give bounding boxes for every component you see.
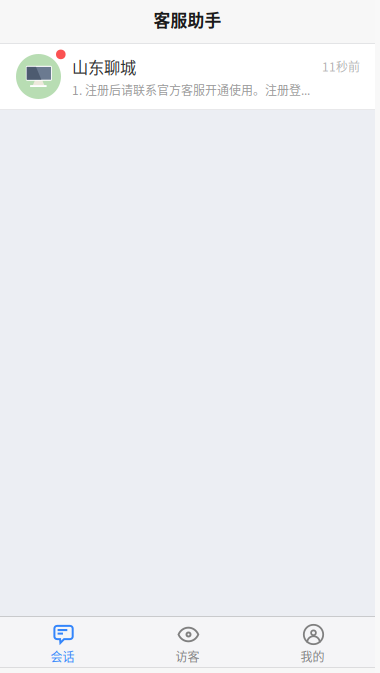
staticText: 我的 — [300, 648, 324, 665]
staticText: 会话 — [50, 648, 74, 665]
button[interactable]: 访客 — [125, 617, 250, 667]
button[interactable]: 山东聊城 — [0, 44, 375, 109]
button[interactable]: 我的 — [250, 617, 375, 667]
staticText: 客服助手 — [153, 7, 221, 32]
staticText: 山东聊城 — [72, 54, 136, 78]
button[interactable]: 会话 — [0, 617, 125, 667]
staticText: 访客 — [175, 648, 199, 665]
staticText: 1. 注册后请联系官方客服开通使用。注册登... — [72, 81, 310, 98]
staticText: 11秒前 — [322, 58, 360, 75]
